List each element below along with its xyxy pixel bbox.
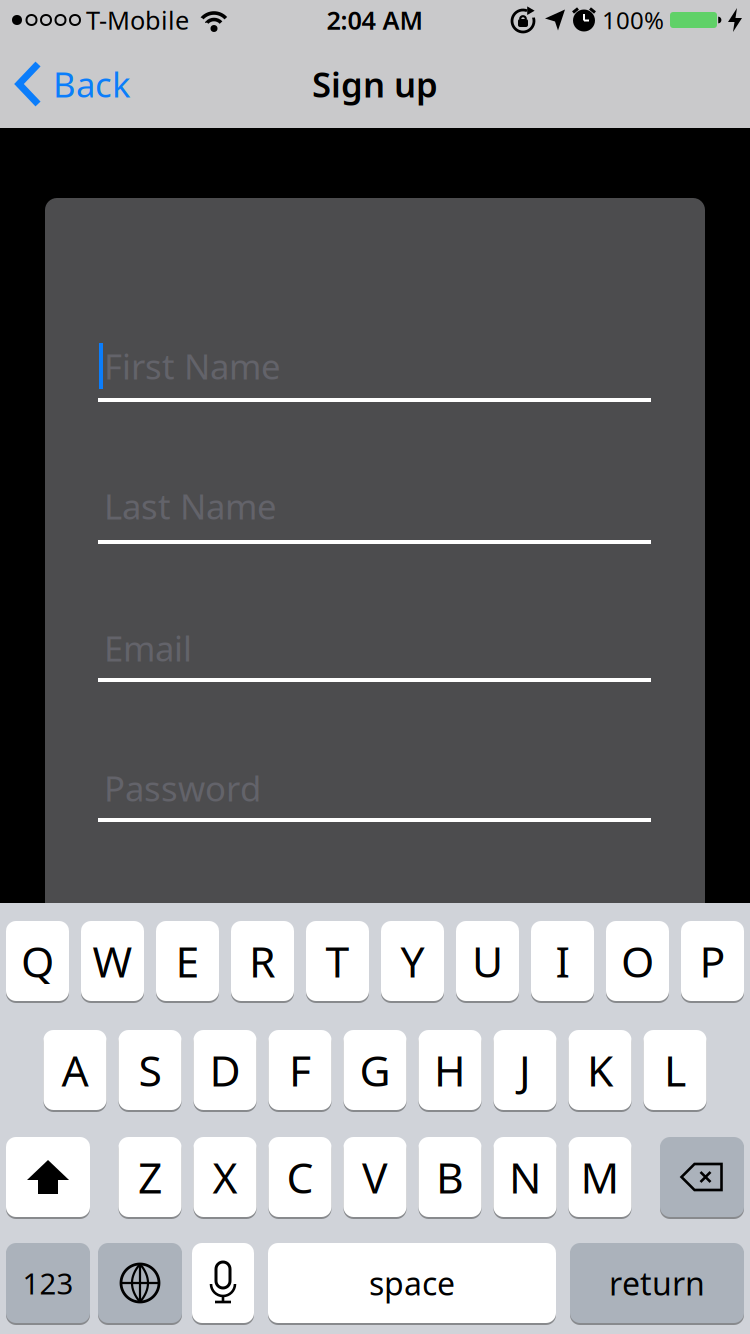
staticText: R (249, 933, 276, 989)
button[interactable]: H (418, 1030, 481, 1110)
staticText: E (175, 933, 199, 989)
staticText: 2:04 AM (326, 3, 423, 37)
staticText: Last Name (104, 483, 277, 529)
staticText: G (359, 1042, 390, 1098)
staticText: C (286, 1149, 313, 1205)
staticText: T (325, 933, 349, 989)
button[interactable]: Delete (660, 1137, 744, 1217)
staticText: V (362, 1149, 388, 1205)
staticText: D (209, 1042, 240, 1098)
button[interactable]: C (268, 1137, 331, 1217)
button[interactable]: J (493, 1030, 556, 1110)
staticText: K (587, 1042, 613, 1098)
staticText: Q (21, 933, 54, 989)
button[interactable]: S (118, 1030, 181, 1110)
button[interactable]: I (531, 921, 594, 1001)
staticText: W (92, 933, 132, 989)
button[interactable]: Q (6, 921, 69, 1001)
button[interactable]: L (643, 1030, 706, 1110)
button[interactable]: U (456, 921, 519, 1001)
staticText: B (436, 1149, 464, 1205)
button[interactable]: W (81, 921, 144, 1001)
button[interactable]: A (43, 1030, 106, 1110)
button[interactable]: return (570, 1243, 744, 1323)
button[interactable]: T (306, 921, 369, 1001)
button[interactable]: Back (0, 40, 131, 128)
button[interactable]: Y (381, 921, 444, 1001)
button[interactable]: V (343, 1137, 406, 1217)
button[interactable]: K (568, 1030, 631, 1110)
button[interactable]: Z (118, 1137, 181, 1217)
button[interactable]: O (606, 921, 669, 1001)
button[interactable]: Email (98, 626, 651, 682)
staticText: L (664, 1042, 686, 1098)
staticText: I (555, 933, 569, 989)
staticText: Password (104, 765, 261, 811)
button[interactable]: N (493, 1137, 556, 1217)
button[interactable]: Dictate (192, 1243, 254, 1323)
staticText: return (609, 1262, 705, 1304)
staticText: Z (138, 1149, 162, 1205)
staticText: X (212, 1149, 237, 1205)
staticText: Back (53, 61, 131, 107)
button[interactable]: F (268, 1030, 331, 1110)
staticText: 100% (602, 4, 664, 36)
button[interactable]: Last Name (98, 484, 651, 544)
button[interactable]: B (418, 1137, 481, 1217)
staticText: First Name (104, 343, 281, 389)
staticText: O (621, 933, 654, 989)
button[interactable]: Shift (6, 1137, 90, 1217)
staticText: P (699, 933, 725, 989)
staticText: T-Mobile (86, 3, 189, 37)
staticText: U (472, 933, 503, 989)
button[interactable]: M (568, 1137, 631, 1217)
button[interactable]: Numbers (6, 1243, 90, 1323)
button[interactable]: G (343, 1030, 406, 1110)
button[interactable]: D (193, 1030, 256, 1110)
staticText: Y (400, 933, 424, 989)
staticText: F (289, 1042, 311, 1098)
button[interactable]: R (231, 921, 294, 1001)
button[interactable]: P (681, 921, 744, 1001)
staticText: Email (104, 625, 192, 671)
button[interactable]: X (193, 1137, 256, 1217)
staticText: S (138, 1042, 161, 1098)
staticText: 123 (22, 1263, 73, 1302)
button[interactable]: Password (98, 766, 651, 822)
staticText: Sign up (312, 61, 438, 107)
staticText: N (509, 1149, 541, 1205)
staticText: M (580, 1149, 619, 1205)
staticText: A (61, 1042, 88, 1098)
button[interactable]: First Name (98, 344, 651, 402)
staticText: H (434, 1042, 466, 1098)
button[interactable]: space (268, 1243, 556, 1323)
staticText: space (369, 1262, 455, 1304)
button[interactable]: E (156, 921, 219, 1001)
staticText: J (519, 1042, 531, 1098)
button[interactable]: Next keyboard (98, 1243, 182, 1323)
